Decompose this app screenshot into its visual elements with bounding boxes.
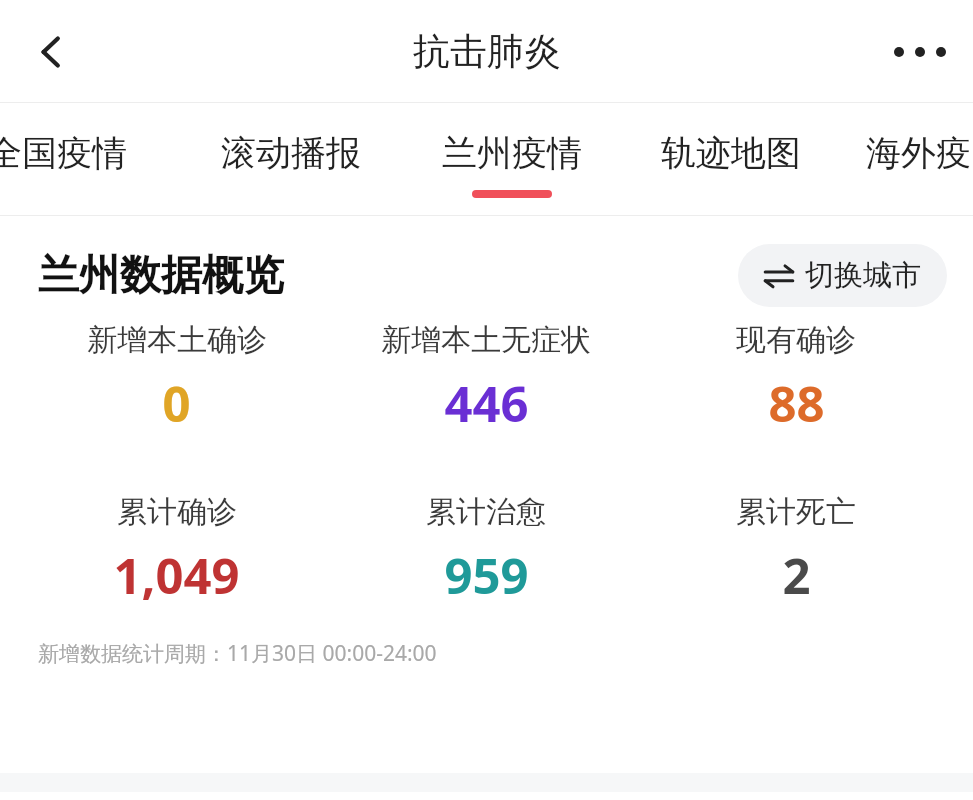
- staticText: 新增数据统计周期：11月30日 00:00-24:00: [38, 639, 437, 668]
- button[interactable]: 海外疫情: [864, 103, 973, 216]
- staticText: 现有确诊: [736, 321, 856, 359]
- button[interactable]: 全国疫情: [0, 103, 140, 216]
- staticText: 446: [444, 370, 529, 437]
- button[interactable]: Back: [18, 19, 84, 85]
- staticText: 海外疫情: [864, 131, 973, 175]
- staticText: 兰州疫情: [442, 131, 582, 175]
- button[interactable]: 兰州疫情: [428, 103, 596, 216]
- staticText: 轨迹地图: [661, 131, 801, 175]
- staticText: 兰州数据概览: [38, 250, 284, 302]
- staticText: 切换城市: [805, 257, 921, 294]
- button[interactable]: 滚动播报: [206, 103, 376, 216]
- button[interactable]: More options: [887, 19, 953, 85]
- staticText: 959: [444, 542, 529, 609]
- staticText: 滚动播报: [221, 131, 361, 175]
- staticText: 1,049: [113, 542, 240, 609]
- staticText: 累计死亡: [736, 493, 856, 531]
- staticText: 全国疫情: [0, 131, 127, 175]
- staticText: 抗击肺炎: [413, 28, 561, 75]
- staticText: 新增本土无症状: [381, 321, 591, 359]
- staticText: 累计确诊: [117, 493, 237, 531]
- button[interactable]: 切换城市: [738, 244, 947, 307]
- staticText: 累计治愈: [426, 493, 546, 531]
- button[interactable]: 轨迹地图: [646, 103, 816, 216]
- staticText: 新增本土确诊: [87, 321, 267, 359]
- staticText: 88: [768, 370, 825, 437]
- staticText: 2: [782, 542, 811, 609]
- staticText: 0: [162, 370, 191, 437]
